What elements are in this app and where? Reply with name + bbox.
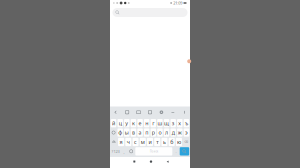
staticText: т <box>156 138 158 145</box>
button[interactable]: ю <box>176 138 182 146</box>
button[interactable]: ш <box>157 119 163 127</box>
button[interactable]: Keyboard tool <box>144 106 156 118</box>
button[interactable]: Change language <box>128 147 134 155</box>
button[interactable]: л <box>164 128 169 137</box>
button[interactable]: ь <box>161 138 167 146</box>
staticText: а <box>139 129 142 136</box>
staticText: 21:09 <box>173 0 182 6</box>
button[interactable]: щ <box>164 119 169 127</box>
button[interactable]: з <box>170 119 176 127</box>
button[interactable]: Keyboard tool <box>121 106 133 118</box>
button[interactable]: , <box>121 147 127 155</box>
button[interactable]: а <box>137 128 143 137</box>
staticText: з <box>172 120 175 127</box>
button[interactable]: и <box>147 138 153 146</box>
staticText: ч <box>127 138 130 145</box>
staticText: р <box>152 129 155 136</box>
staticText: х <box>178 120 181 127</box>
staticText: п <box>145 129 148 136</box>
button[interactable]: Back <box>126 157 143 168</box>
staticText: я <box>120 138 123 145</box>
staticText: , <box>124 149 125 154</box>
button[interactable]: б <box>169 138 175 146</box>
button[interactable]: Keyboard tool <box>156 106 167 118</box>
staticText: й <box>112 120 115 127</box>
button[interactable]: Search <box>180 147 189 155</box>
staticText: Поиск <box>150 150 158 153</box>
staticText: м <box>141 138 145 145</box>
staticText: г <box>152 120 154 127</box>
staticText: л <box>165 129 168 136</box>
button[interactable]: г <box>151 119 156 127</box>
button[interactable]: й <box>111 119 116 127</box>
button[interactable]: ы <box>124 128 129 137</box>
button[interactable]: Search <box>112 8 187 17</box>
staticText: ⌫ <box>184 140 188 143</box>
button[interactable]: ч <box>125 138 131 146</box>
button[interactable]: ф <box>117 128 123 137</box>
button[interactable]: ж <box>177 128 183 137</box>
button[interactable]: в <box>131 128 136 137</box>
button[interactable]: ц <box>117 119 123 127</box>
button[interactable]: Keyboard tool <box>110 106 121 118</box>
staticText: и <box>148 138 151 145</box>
button[interactable]: Keyboard tool <box>167 106 178 118</box>
button[interactable]: о <box>157 128 163 137</box>
button[interactable]: Space <box>135 147 172 155</box>
button[interactable]: ?123 <box>111 147 120 155</box>
staticText: щ <box>164 120 169 127</box>
button[interactable]: д <box>170 128 176 137</box>
button[interactable]: Home <box>143 157 159 168</box>
staticText: ж <box>178 129 182 136</box>
staticText: ?123 <box>111 149 119 154</box>
staticText: э <box>185 129 188 136</box>
staticText: д <box>172 129 175 136</box>
staticText: ы <box>125 129 129 136</box>
button[interactable]: р <box>151 128 156 137</box>
button[interactable]: м <box>140 138 146 146</box>
staticText: ф <box>118 129 122 136</box>
staticText: ц <box>119 120 122 127</box>
button[interactable]: Shift <box>111 138 117 146</box>
staticText: о <box>158 129 161 136</box>
staticText: б <box>170 138 173 145</box>
button[interactable]: Keyboard tool <box>133 106 144 118</box>
staticText: с <box>134 138 137 145</box>
button[interactable]: х <box>177 119 183 127</box>
staticText: ь <box>163 138 166 145</box>
staticText: е <box>139 120 142 127</box>
staticText: к <box>132 120 135 127</box>
button[interactable]: у <box>124 119 129 127</box>
button[interactable]: ъ <box>184 119 189 127</box>
button[interactable]: с <box>132 138 139 146</box>
button[interactable]: е <box>137 119 143 127</box>
staticText: н <box>145 120 148 127</box>
button[interactable]: п <box>144 128 149 137</box>
button[interactable]: Recents <box>159 157 176 168</box>
button[interactable]: т <box>154 138 160 146</box>
button[interactable]: к <box>131 119 136 127</box>
button[interactable]: Backspace <box>183 138 189 146</box>
button[interactable]: Emoji <box>111 128 116 137</box>
button[interactable]: н <box>144 119 149 127</box>
staticText: у <box>125 120 128 127</box>
button[interactable]: Keyboard tool <box>179 106 190 118</box>
staticText: в <box>132 129 135 136</box>
staticText: ю <box>177 138 181 145</box>
button[interactable]: я <box>118 138 124 146</box>
staticText: ъ <box>185 120 188 127</box>
staticText: ш <box>157 120 162 127</box>
button[interactable]: э <box>184 128 189 137</box>
